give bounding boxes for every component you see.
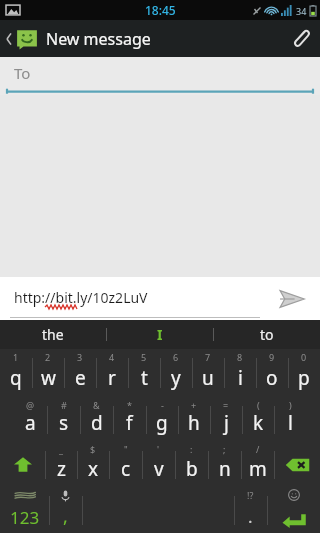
- staticText: $: [90, 443, 96, 455]
- staticText: m: [249, 456, 267, 482]
- button[interactable]: the: [0, 320, 106, 349]
- staticText: I: [157, 325, 163, 344]
- staticText: 2: [45, 351, 51, 363]
- button[interactable]: ": [109, 442, 142, 487]
- staticText: q: [10, 365, 22, 391]
- staticText: 18:45: [145, 2, 176, 18]
- staticText: s: [59, 410, 69, 436]
- staticText: 1: [13, 351, 19, 363]
- button[interactable]: Shift: [0, 442, 45, 487]
- button[interactable]: Backspace: [274, 442, 320, 487]
- staticText: !?: [247, 489, 254, 501]
- staticText: z: [57, 456, 66, 482]
- button[interactable]: +: [178, 397, 210, 442]
- button[interactable]: New message: [0, 24, 159, 54]
- button[interactable]: 5: [128, 349, 160, 397]
- button[interactable]: 123: [0, 487, 49, 533]
- staticText: To: [14, 63, 31, 83]
- staticText: ': [157, 443, 160, 455]
- staticText: ): [289, 399, 292, 411]
- staticText: v: [154, 456, 164, 482]
- button[interactable]: 3: [64, 349, 96, 397]
- button[interactable]: To: [0, 57, 320, 95]
- staticText: ,: [63, 504, 68, 529]
- staticText: i: [238, 365, 243, 391]
- staticText: =: [223, 399, 229, 411]
- button[interactable]: Send: [264, 277, 320, 320]
- staticText: l: [288, 410, 293, 436]
- button[interactable]: @: [14, 397, 47, 442]
- button[interactable]: 6: [160, 349, 192, 397]
- staticText: u: [202, 365, 214, 391]
- staticText: d: [91, 410, 103, 436]
- button[interactable]: ;: [208, 442, 241, 487]
- staticText: (: [257, 399, 260, 411]
- staticText: 4: [109, 351, 115, 363]
- staticText: /: [256, 443, 260, 455]
- button[interactable]: Attach: [280, 20, 320, 57]
- staticText: t: [141, 365, 148, 391]
- staticText: :: [190, 443, 193, 455]
- button[interactable]: ): [274, 397, 306, 442]
- staticText: 6: [173, 351, 179, 363]
- button[interactable]: =: [210, 397, 242, 442]
- staticText: g: [156, 410, 168, 436]
- staticText: +: [191, 399, 197, 411]
- staticText: .: [248, 505, 253, 528]
- staticText: y: [171, 365, 181, 391]
- staticText: 34: [296, 5, 307, 17]
- staticText: 3: [77, 351, 83, 363]
- button[interactable]: I: [107, 320, 213, 349]
- staticText: 7: [205, 351, 211, 363]
- staticText: c: [121, 456, 131, 482]
- staticText: b: [186, 456, 198, 482]
- staticText: http://bit.ly/10z2LuV: [14, 288, 148, 307]
- staticText: a: [25, 410, 36, 436]
- staticText: 0: [301, 351, 307, 363]
- staticText: j: [224, 410, 229, 436]
- staticText: k: [253, 410, 264, 436]
- button[interactable]: 8: [224, 349, 256, 397]
- staticText: &: [93, 399, 100, 411]
- button[interactable]: /: [241, 442, 274, 487]
- button[interactable]: _: [45, 442, 77, 487]
- button[interactable]: 0: [288, 349, 320, 397]
- staticText: #: [61, 399, 67, 411]
- staticText: r: [108, 365, 116, 391]
- button[interactable]: $: [77, 442, 109, 487]
- staticText: o: [266, 365, 278, 391]
- button[interactable]: ,: [49, 487, 82, 533]
- staticText: x: [88, 456, 99, 482]
- staticText: 9: [269, 351, 275, 363]
- button[interactable]: !?: [234, 487, 267, 533]
- staticText: e: [75, 365, 86, 391]
- staticText: h: [188, 410, 200, 436]
- button[interactable]: :: [175, 442, 208, 487]
- staticText: 8: [237, 351, 243, 363]
- button[interactable]: *: [113, 397, 146, 442]
- staticText: 123: [10, 506, 40, 529]
- staticText: 5: [141, 351, 147, 363]
- staticText: ": [124, 443, 128, 455]
- button[interactable]: #: [47, 397, 80, 442]
- staticText: *: [127, 399, 132, 411]
- button[interactable]: 4: [96, 349, 128, 397]
- staticText: New message: [46, 28, 151, 50]
- button[interactable]: &: [80, 397, 113, 442]
- button[interactable]: ': [142, 442, 175, 487]
- button[interactable]: to: [214, 320, 320, 349]
- staticText: p: [298, 365, 310, 391]
- button[interactable]: http://bit.ly/10z2LuV: [0, 277, 264, 320]
- staticText: n: [219, 456, 231, 482]
- button[interactable]: 2: [32, 349, 64, 397]
- staticText: to: [260, 325, 274, 344]
- button[interactable]: 1: [0, 349, 32, 397]
- staticText: the: [42, 325, 64, 344]
- button[interactable]: Enter: [267, 487, 320, 533]
- button[interactable]: 7: [192, 349, 224, 397]
- button[interactable]: 9: [256, 349, 288, 397]
- button[interactable]: (: [242, 397, 274, 442]
- staticText: _: [59, 443, 63, 455]
- button[interactable]: -: [146, 397, 178, 442]
